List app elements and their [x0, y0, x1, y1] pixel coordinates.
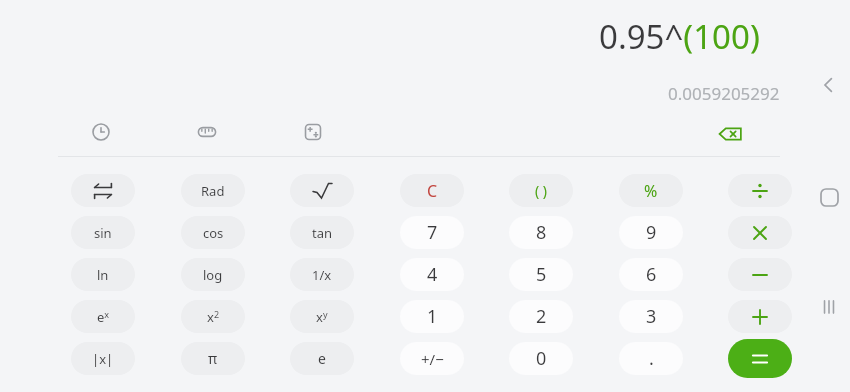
button[interactable]: 4: [400, 258, 464, 291]
button[interactable]: ( ): [509, 174, 573, 207]
button[interactable]: tan: [290, 216, 354, 249]
staticText: ex: [97, 308, 110, 326]
button[interactable]: log: [181, 258, 245, 291]
button[interactable]: x2: [181, 300, 245, 333]
button[interactable]: 9: [619, 216, 683, 249]
staticText: 5: [536, 262, 547, 287]
staticText: ( ): [535, 181, 548, 200]
staticText: x2: [207, 308, 220, 326]
staticText: sin: [94, 224, 112, 242]
button[interactable]: %: [619, 174, 683, 207]
staticText: xy: [316, 308, 328, 326]
staticText: 1/x: [312, 266, 332, 284]
button[interactable]: Back: [810, 66, 848, 104]
button[interactable]: History: [86, 117, 116, 147]
button[interactable]: π: [181, 342, 245, 375]
staticText: 8: [536, 220, 547, 245]
button[interactable]: sin: [71, 216, 135, 249]
button[interactable]: 5: [509, 258, 573, 291]
staticText: 6: [646, 262, 657, 287]
button[interactable]: Swap: [71, 174, 135, 207]
button[interactable]: +/−: [400, 342, 464, 375]
button[interactable]: |x|: [71, 342, 135, 375]
button[interactable]: .: [619, 342, 683, 375]
staticText: 0.0059205292: [668, 82, 780, 105]
staticText: |x|: [92, 350, 114, 368]
button[interactable]: 8: [509, 216, 573, 249]
button[interactable]: Scientific keypad: [298, 117, 328, 147]
staticText: ln: [97, 266, 109, 284]
button[interactable]: Unit converter: [192, 117, 222, 147]
staticText: +/−: [421, 349, 444, 369]
staticText: 4: [427, 262, 438, 287]
staticText: 0.95^(100): [599, 14, 760, 59]
button[interactable]: 2: [509, 300, 573, 333]
staticText: 1: [427, 304, 438, 329]
button[interactable]: C: [400, 174, 464, 207]
staticText: 2: [536, 304, 547, 329]
staticText: 3: [646, 304, 657, 329]
staticText: C: [427, 180, 438, 202]
button[interactable]: e: [290, 342, 354, 375]
button[interactable]: Square root: [290, 174, 354, 207]
staticText: e: [318, 349, 326, 368]
button[interactable]: Divide: [728, 174, 792, 207]
button[interactable]: Minus: [728, 258, 792, 291]
staticText: Rad: [201, 182, 225, 200]
staticText: 9: [646, 220, 657, 245]
button[interactable]: Home: [810, 178, 848, 216]
staticText: cos: [203, 224, 224, 242]
staticText: tan: [312, 224, 333, 242]
staticText: log: [203, 266, 223, 284]
button[interactable]: Rad: [181, 174, 245, 207]
button[interactable]: 7: [400, 216, 464, 249]
staticText: 7: [427, 220, 438, 245]
button[interactable]: Plus: [728, 300, 792, 333]
button[interactable]: cos: [181, 216, 245, 249]
button[interactable]: 0: [509, 342, 573, 375]
button[interactable]: 1/x: [290, 258, 354, 291]
button[interactable]: Recent apps: [810, 288, 848, 326]
button[interactable]: Backspace: [714, 117, 748, 151]
staticText: 0: [536, 346, 547, 371]
staticText: %: [644, 180, 658, 202]
button[interactable]: ln: [71, 258, 135, 291]
button[interactable]: xy: [290, 300, 354, 333]
button[interactable]: Multiply: [728, 216, 792, 249]
button[interactable]: ex: [71, 300, 135, 333]
button[interactable]: 1: [400, 300, 464, 333]
staticText: .: [649, 346, 654, 371]
button[interactable]: 3: [619, 300, 683, 333]
button[interactable]: [728, 339, 792, 378]
button[interactable]: 6: [619, 258, 683, 291]
staticText: π: [208, 349, 218, 368]
